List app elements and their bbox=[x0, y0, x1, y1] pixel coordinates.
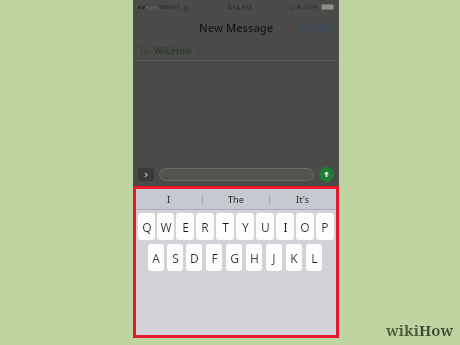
staticText: SMART bbox=[160, 3, 180, 11]
button[interactable]: T bbox=[216, 213, 234, 240]
button[interactable]: Cancel bbox=[299, 18, 335, 36]
staticText: J bbox=[272, 250, 276, 266]
staticText: Cancel bbox=[301, 20, 333, 34]
button[interactable]: F bbox=[206, 244, 222, 271]
staticText: T bbox=[222, 219, 229, 235]
staticText: WikiHow bbox=[154, 44, 192, 56]
staticText: I bbox=[283, 219, 288, 235]
button[interactable]: I bbox=[276, 213, 294, 240]
staticText: D bbox=[190, 250, 199, 266]
staticText: It's bbox=[296, 193, 310, 205]
staticText: A bbox=[152, 250, 160, 266]
staticText: H bbox=[250, 250, 259, 266]
staticText: G bbox=[230, 250, 239, 266]
staticText: P bbox=[321, 219, 329, 235]
button[interactable]: P bbox=[316, 213, 334, 240]
button[interactable]: Q bbox=[138, 213, 155, 240]
staticText: L bbox=[311, 250, 318, 266]
button[interactable]: L bbox=[306, 244, 322, 271]
button[interactable]: The bbox=[203, 189, 269, 209]
button[interactable]: Y bbox=[236, 213, 254, 240]
staticText: W bbox=[160, 219, 172, 235]
staticText: 100% bbox=[303, 3, 319, 11]
button[interactable]: W bbox=[157, 213, 174, 240]
staticText: To: bbox=[139, 44, 154, 56]
staticText: How bbox=[419, 320, 454, 340]
staticText: wiki bbox=[386, 320, 419, 340]
staticText: 4:14 PM bbox=[227, 3, 252, 12]
button[interactable]: K bbox=[286, 244, 302, 271]
staticText: U bbox=[261, 219, 270, 235]
staticText: The bbox=[228, 193, 244, 205]
button[interactable]: I bbox=[136, 189, 202, 209]
staticText: E bbox=[182, 219, 189, 235]
button[interactable]: J bbox=[266, 244, 282, 271]
staticText: Y bbox=[242, 219, 249, 235]
button[interactable]: R bbox=[196, 213, 214, 240]
button[interactable]: Show more options bbox=[138, 168, 154, 181]
button[interactable]: S bbox=[167, 244, 183, 271]
staticText: I bbox=[167, 193, 171, 205]
button[interactable] bbox=[159, 168, 314, 181]
button[interactable]: O bbox=[296, 213, 314, 240]
button[interactable]: A bbox=[148, 244, 164, 271]
staticText: Q bbox=[142, 219, 152, 235]
staticText: K bbox=[290, 250, 298, 266]
button[interactable]: U bbox=[256, 213, 274, 240]
button[interactable]: H bbox=[246, 244, 262, 271]
staticText: New Message bbox=[199, 20, 274, 35]
staticText: S bbox=[172, 250, 179, 266]
button[interactable]: G bbox=[226, 244, 242, 271]
button[interactable]: E bbox=[176, 213, 194, 240]
button[interactable]: D bbox=[186, 244, 202, 271]
staticText: R bbox=[201, 219, 209, 235]
button[interactable]: Send bbox=[319, 167, 334, 182]
staticText: O bbox=[300, 219, 310, 235]
staticText: F bbox=[211, 250, 218, 266]
button[interactable]: It's bbox=[270, 189, 336, 209]
